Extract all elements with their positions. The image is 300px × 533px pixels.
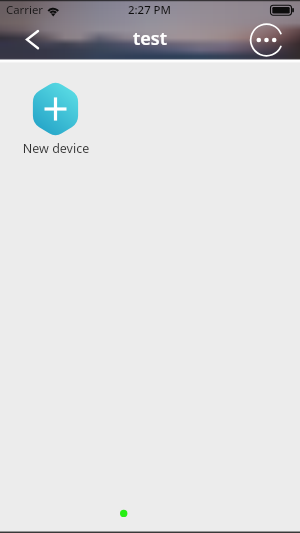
staticText: Carrier [6, 2, 44, 18]
staticText: test [0, 26, 300, 51]
staticText: New device [18, 140, 94, 157]
button[interactable]: New device [18, 78, 94, 160]
staticText: 2:27 PM [128, 2, 172, 18]
button[interactable]: More options [248, 22, 285, 59]
button[interactable]: Back [14, 22, 50, 58]
